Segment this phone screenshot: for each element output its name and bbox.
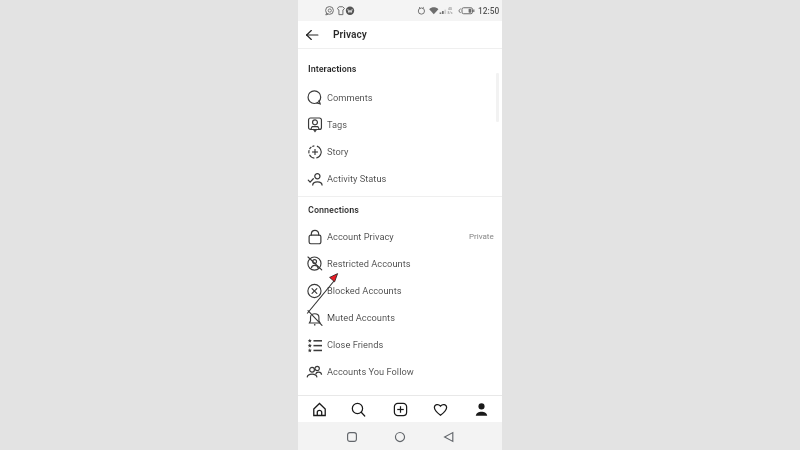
button[interactable]: Activity Status (298, 165, 502, 192)
button[interactable]: Back (298, 21, 326, 49)
button[interactable]: Comments (298, 84, 502, 111)
button[interactable]: Home (306, 396, 332, 422)
button[interactable]: Muted Accounts (298, 304, 502, 331)
staticText: Comments (327, 92, 373, 103)
button[interactable]: Create new post (387, 396, 413, 422)
staticText: 12:50 (478, 6, 500, 16)
button[interactable]: Blocked Accounts (298, 277, 502, 304)
button[interactable]: Back (438, 426, 460, 448)
button[interactable]: Home (389, 426, 411, 448)
button[interactable]: Close Friends (298, 331, 502, 358)
staticText: Interactions (308, 64, 357, 75)
button[interactable]: Account Privacy (298, 223, 502, 250)
button[interactable]: Tags (298, 111, 502, 138)
button[interactable]: Accounts You Follow (298, 358, 502, 385)
button[interactable]: Activity (427, 396, 453, 422)
staticText: Story (327, 146, 349, 157)
staticText: Tags (327, 119, 348, 130)
button[interactable]: Profile (468, 396, 494, 422)
button[interactable]: Story (298, 138, 502, 165)
staticText: Accounts You Follow (327, 366, 414, 377)
staticText: Restricted Accounts (327, 258, 411, 269)
staticText: 4G 8/s (447, 7, 453, 15)
staticText: Blocked Accounts (327, 285, 402, 296)
staticText: Connections (308, 205, 359, 216)
button[interactable]: Recents (341, 426, 363, 448)
staticText: Muted Accounts (327, 312, 395, 323)
staticText: Activity Status (327, 173, 387, 184)
staticText: Close Friends (327, 339, 384, 350)
button[interactable]: Restricted Accounts (298, 250, 502, 277)
staticText: Privacy (333, 29, 367, 41)
button[interactable]: Search (345, 396, 371, 422)
staticText: Account Privacy (327, 231, 394, 242)
staticText: Private (469, 232, 494, 241)
